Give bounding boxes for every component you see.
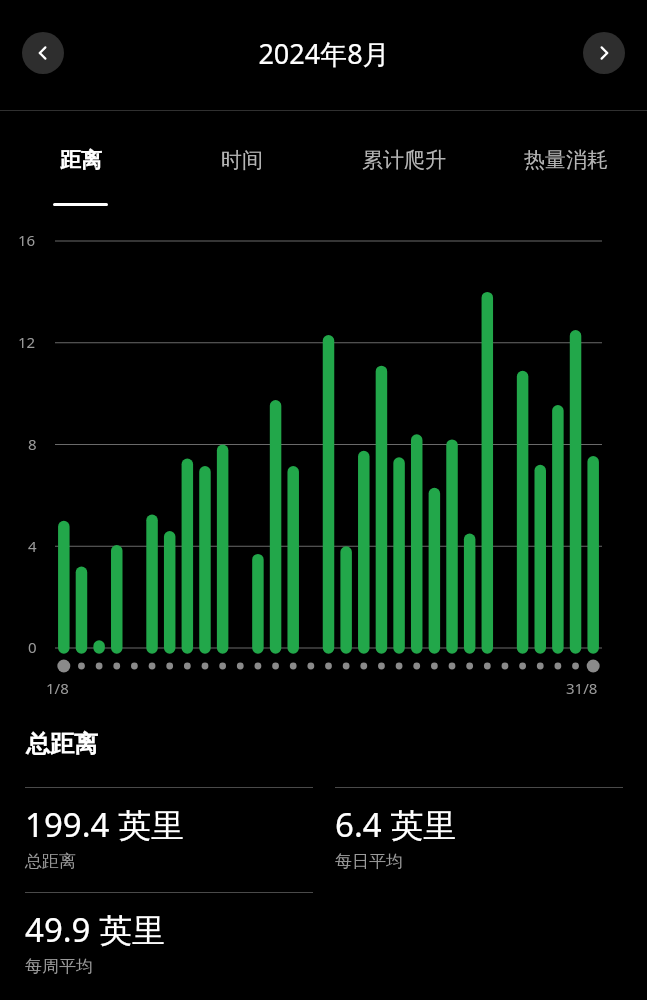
staticText: 0 [28,637,37,657]
staticText: 12 [18,332,36,352]
staticText: 8 [28,434,37,454]
button[interactable]: Next month [583,32,625,74]
button[interactable]: 49.9 英里 [0,892,323,997]
staticText: 4 [28,536,37,556]
button[interactable]: 199.4 英里 [0,787,323,892]
staticText: 总距离 [26,729,98,759]
button[interactable]: 累计爬升 [323,111,485,218]
staticText: 31/8 [566,678,598,698]
staticText: 199.4 英里 [25,802,184,847]
staticText: 每周平均 [25,956,93,977]
button[interactable]: 6.4 英里 [323,787,647,892]
button[interactable]: Previous month [22,32,64,74]
staticText: 时间 [221,147,263,173]
staticText: 49.9 英里 [25,907,166,952]
staticText: 1/8 [46,678,69,698]
staticText: 总距离 [25,851,76,872]
staticText: 每日平均 [335,851,403,872]
staticText: 累计爬升 [362,147,446,173]
staticText: 热量消耗 [524,147,608,173]
staticText: 6.4 英里 [335,802,457,847]
button[interactable]: 距离 [0,111,161,218]
staticText: 2024年8月 [258,35,390,72]
button[interactable]: 热量消耗 [485,111,647,218]
button[interactable]: 时间 [161,111,323,218]
staticText: 距离 [60,147,102,173]
staticText: 16 [18,230,36,250]
